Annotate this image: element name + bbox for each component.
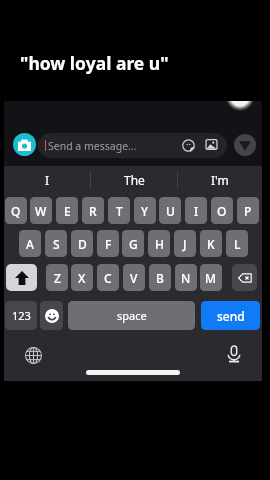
staticText: X [78, 270, 86, 286]
button[interactable]: I [4, 168, 90, 192]
button[interactable]: Camera [13, 133, 36, 156]
button[interactable]: Send a message... [38, 133, 227, 158]
button[interactable]: Y [134, 197, 156, 224]
staticText: The [124, 172, 145, 188]
button[interactable]: L [226, 230, 248, 257]
staticText: T [116, 203, 123, 219]
button[interactable]: Gallery [202, 135, 220, 153]
button[interactable]: O [211, 197, 233, 224]
staticText: G [129, 236, 138, 252]
button[interactable]: H [148, 230, 170, 257]
staticText: L [234, 236, 241, 252]
button[interactable]: W [30, 197, 52, 224]
staticText: R [89, 203, 97, 219]
button[interactable]: G [122, 230, 144, 257]
staticText: D [78, 236, 87, 252]
button[interactable]: R [82, 197, 104, 224]
button[interactable]: Stickers [179, 136, 197, 154]
staticText: 123 [12, 308, 31, 323]
staticText: Send a message... [48, 139, 137, 153]
button[interactable]: A [19, 230, 41, 257]
staticText: W [35, 203, 47, 219]
staticText: send [217, 308, 245, 324]
staticText: N [181, 270, 191, 286]
button[interactable]: Q [5, 197, 27, 224]
staticText: space [117, 308, 147, 323]
staticText: Z [54, 270, 61, 286]
staticText: K [207, 236, 215, 252]
staticText: M [205, 270, 217, 286]
button[interactable]: V [123, 264, 145, 291]
staticText: O [217, 203, 227, 219]
button[interactable]: send [201, 301, 260, 330]
staticText: I [194, 203, 199, 219]
staticText: I [45, 172, 50, 188]
button[interactable]: M [200, 264, 222, 291]
button[interactable]: Emoji [40, 301, 63, 330]
staticText: H [155, 236, 164, 252]
button[interactable]: 123 [5, 301, 37, 330]
button[interactable]: J [174, 230, 196, 257]
button[interactable]: C [97, 264, 119, 291]
button[interactable]: Backspace [232, 264, 257, 291]
button[interactable]: Shift [6, 264, 37, 291]
button[interactable]: T [108, 197, 130, 224]
button[interactable]: N [175, 264, 197, 291]
staticText: B [156, 270, 164, 286]
button[interactable]: Voice input [223, 343, 245, 365]
button[interactable]: Send [234, 134, 256, 156]
button[interactable]: D [71, 230, 93, 257]
staticText: A [26, 236, 34, 252]
staticText: S [53, 236, 60, 252]
button[interactable]: Change keyboard [22, 344, 44, 366]
staticText: E [64, 203, 71, 219]
button[interactable]: K [200, 230, 222, 257]
button[interactable]: space [68, 301, 195, 330]
button[interactable]: The [90, 168, 178, 192]
button[interactable]: B [149, 264, 171, 291]
button[interactable]: S [45, 230, 67, 257]
staticText: "how loyal are u" [20, 51, 169, 75]
staticText: J [183, 236, 187, 252]
button[interactable]: U [159, 197, 181, 224]
staticText: Y [141, 203, 149, 219]
staticText: I'm [211, 172, 229, 188]
button[interactable]: E [56, 197, 78, 224]
staticText: P [244, 203, 252, 219]
button[interactable]: I'm [177, 168, 262, 192]
staticText: Q [11, 203, 21, 219]
staticText: V [130, 270, 138, 286]
staticText: F [105, 236, 112, 252]
button[interactable]: P [237, 197, 259, 224]
staticText: C [104, 270, 112, 286]
staticText: U [166, 203, 175, 219]
button[interactable]: F [97, 230, 119, 257]
button[interactable]: Z [46, 264, 68, 291]
button[interactable]: "how loyal are u" [20, 50, 169, 76]
button[interactable]: I [185, 197, 207, 224]
button[interactable]: X [71, 264, 93, 291]
